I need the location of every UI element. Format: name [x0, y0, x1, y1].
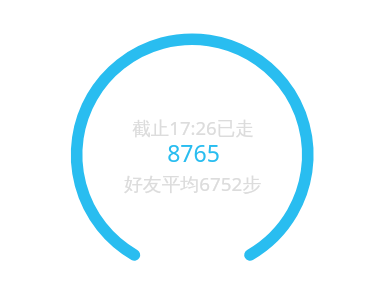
button[interactable]: Step counter ring, 8765 steps today: [0, 0, 371, 298]
staticText: 截止17:26已走: [132, 115, 254, 140]
staticText: 好友平均6752步: [124, 171, 261, 197]
staticText: 8765: [167, 137, 220, 168]
